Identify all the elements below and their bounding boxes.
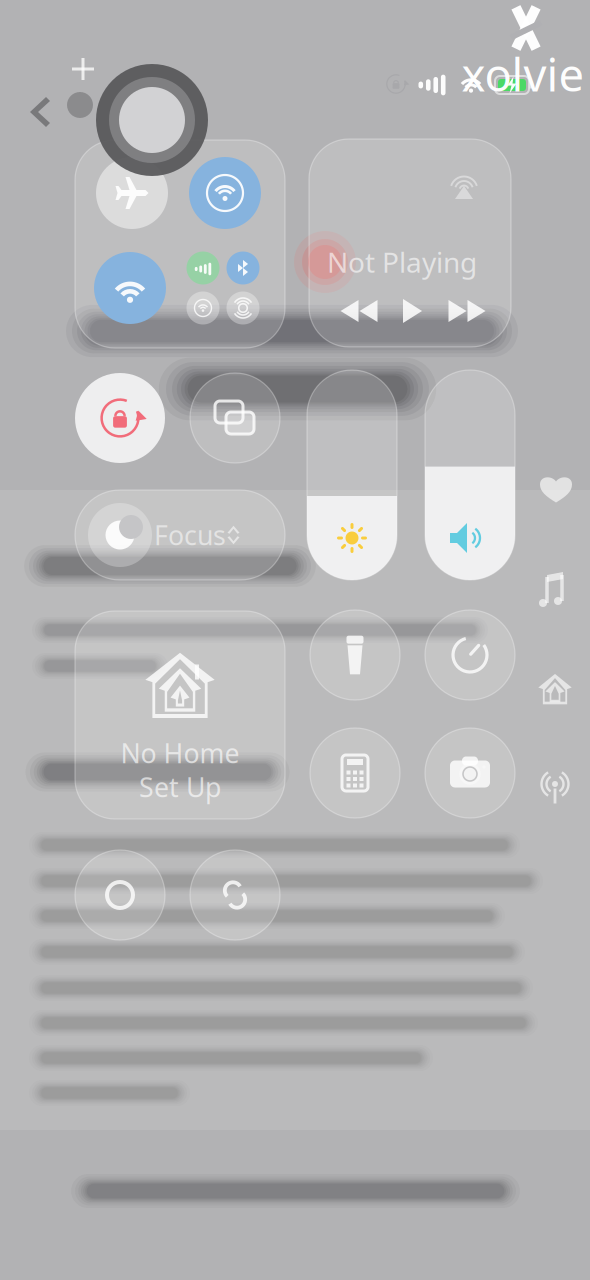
button[interactable]: Previous [340, 300, 378, 322]
button[interactable]: Next [448, 300, 486, 322]
button[interactable]: Brightness [307, 370, 397, 580]
button[interactable]: Flashlight [310, 610, 400, 700]
button[interactable]: Now Playing [531, 568, 577, 616]
staticText: xolvie [461, 44, 584, 104]
staticText: Set Up [139, 769, 221, 805]
button[interactable]: Screen Recording [75, 850, 165, 940]
button[interactable]: Play [400, 299, 426, 323]
button[interactable]: No Home [75, 611, 285, 819]
staticText: Focus [154, 517, 226, 553]
button[interactable]: Music Recognition [190, 850, 280, 940]
staticText: Not Playing [327, 243, 477, 281]
button[interactable]: Add [71, 57, 95, 81]
button[interactable]: Volume [425, 370, 515, 580]
button[interactable]: Camera [425, 728, 515, 818]
button[interactable]: Screen Mirroring [190, 373, 280, 463]
button[interactable]: Timer [425, 610, 515, 700]
button[interactable]: Health [532, 466, 580, 511]
staticText: No Home [120, 735, 239, 771]
button[interactable]: Focus [75, 490, 285, 580]
button[interactable]: Calculator [310, 728, 400, 818]
button[interactable]: Home [530, 665, 580, 715]
button[interactable]: Connectivity [530, 763, 580, 813]
button[interactable]: Rotation Lock [75, 373, 165, 463]
